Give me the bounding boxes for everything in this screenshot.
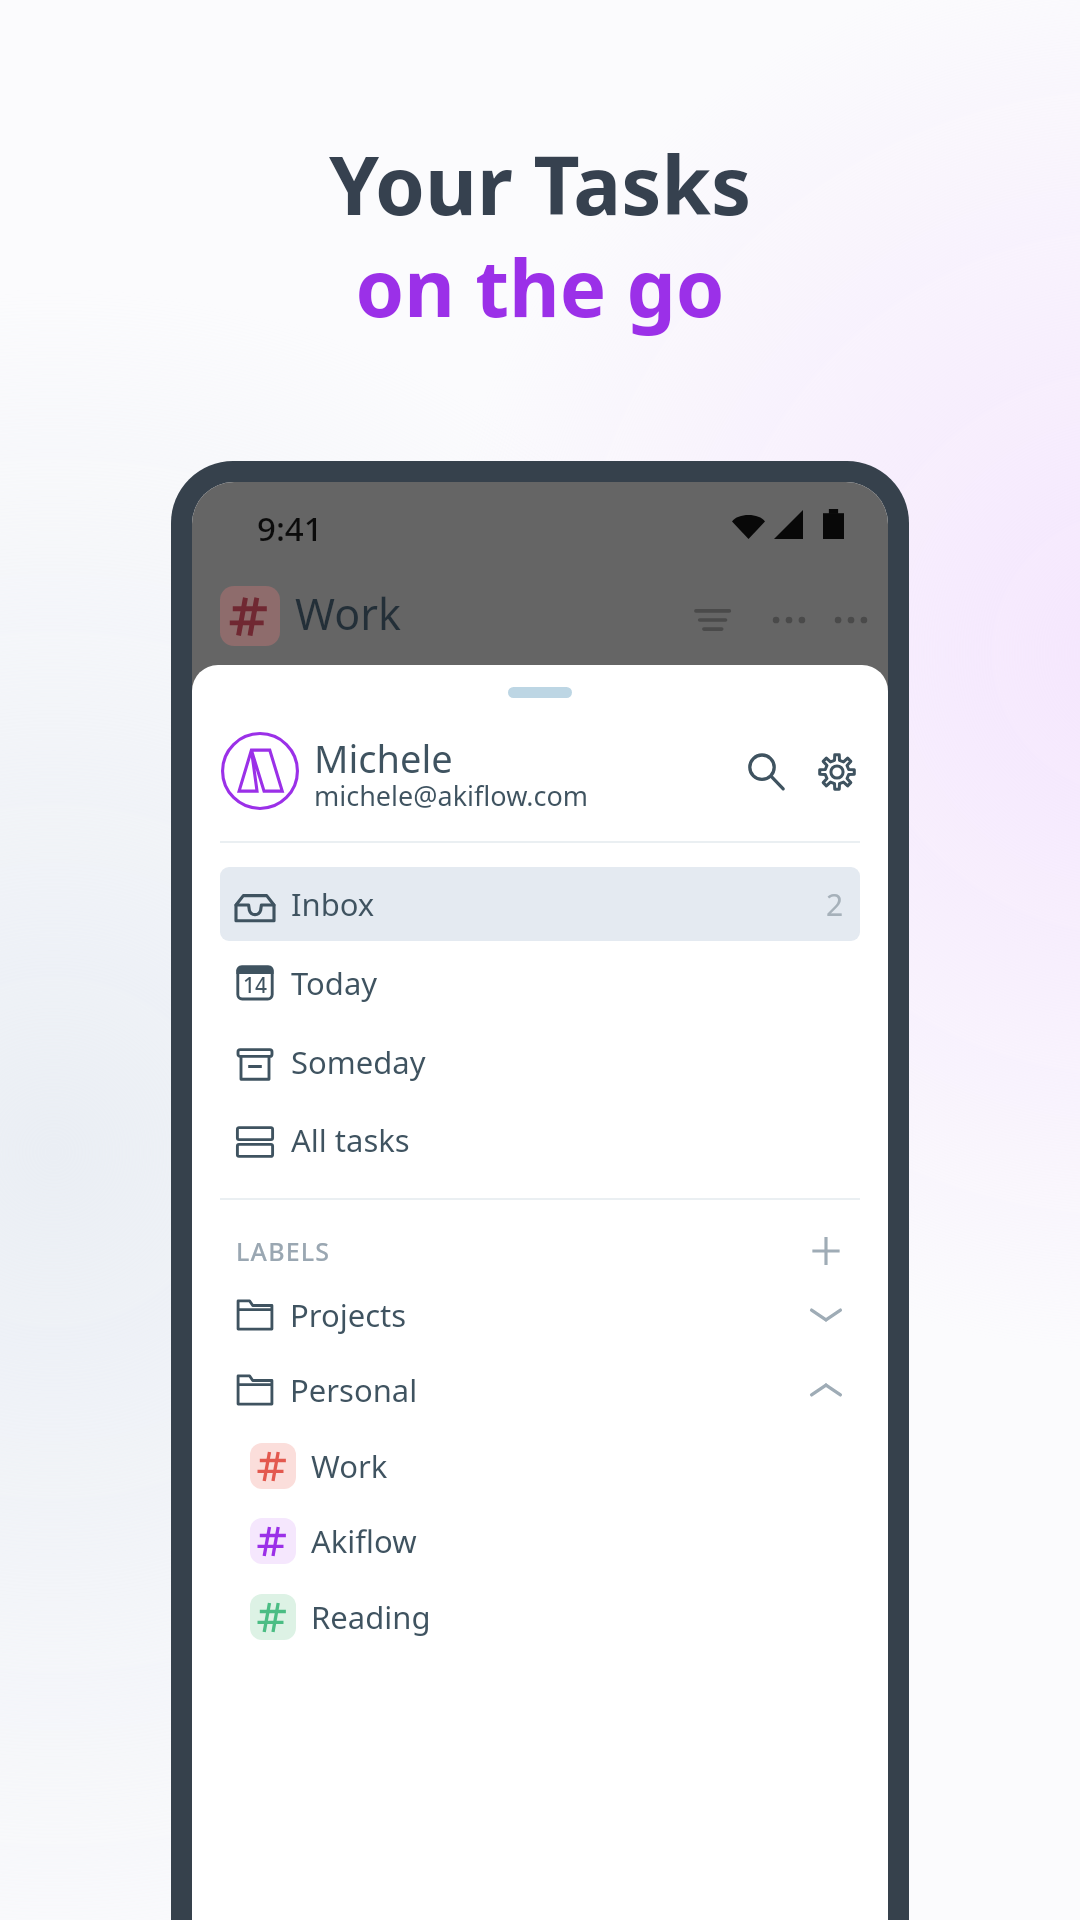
staticText: Work: [295, 584, 401, 643]
button[interactable]: Work label: [220, 586, 280, 646]
staticText: Projects: [290, 1294, 407, 1336]
staticText: Someday: [291, 1041, 426, 1083]
staticText: All tasks: [291, 1119, 410, 1161]
staticText: 9:41: [257, 506, 323, 551]
button[interactable]: Work: [220, 1429, 860, 1503]
staticText: Work: [311, 1445, 388, 1487]
button[interactable]: Projects: [220, 1278, 860, 1352]
staticText: 14: [243, 971, 268, 1000]
button[interactable]: Inbox: [220, 867, 860, 941]
button[interactable]: LABELS: [220, 1216, 860, 1286]
staticText: Reading: [311, 1596, 431, 1638]
button[interactable]: Settings: [816, 751, 858, 793]
button[interactable]: Akiflow: [220, 1504, 860, 1578]
staticText: Personal: [290, 1369, 418, 1411]
staticText: Your Tasks: [0, 129, 1080, 238]
button[interactable]: All tasks: [220, 1103, 860, 1177]
staticText: michele@akiflow.com: [314, 777, 589, 814]
button[interactable]: Personal: [220, 1353, 860, 1427]
staticText: Michele: [314, 732, 453, 784]
staticText: Inbox: [291, 883, 375, 925]
button[interactable]: Reading: [220, 1580, 860, 1654]
button[interactable]: Search: [746, 752, 786, 792]
button[interactable]: More: [832, 601, 870, 639]
staticText: on the go: [0, 234, 1080, 340]
staticText: 2: [826, 884, 844, 925]
staticText: LABELS: [236, 1234, 331, 1268]
staticText: Akiflow: [311, 1520, 417, 1562]
button[interactable]: More options: [770, 601, 808, 639]
button[interactable]: Today: [220, 946, 860, 1020]
button[interactable]: Sort: [694, 601, 732, 639]
staticText: Today: [291, 962, 378, 1004]
button[interactable]: Add label: [804, 1229, 848, 1273]
button[interactable]: Someday: [220, 1025, 860, 1099]
